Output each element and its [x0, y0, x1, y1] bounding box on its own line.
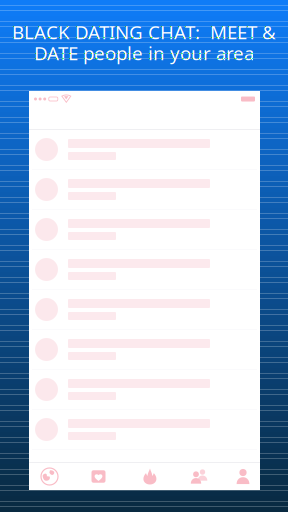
button[interactable]: Profile: [226, 463, 260, 490]
button[interactable]: Chat conversation: [29, 170, 260, 210]
button[interactable]: Likes: [70, 463, 127, 490]
button[interactable]: Discover: [29, 463, 70, 490]
staticText: BLACK DATING CHAT: MEET &: [12, 20, 276, 44]
button[interactable]: Chat conversation: [29, 330, 260, 370]
button[interactable]: Chat conversation: [29, 370, 260, 410]
button[interactable]: Chat conversation: [29, 250, 260, 290]
button[interactable]: Chat conversation: [29, 410, 260, 450]
button[interactable]: Chat conversation: [29, 130, 260, 170]
button[interactable]: Chat conversation: [29, 290, 260, 330]
staticText: DATE people in your area: [34, 41, 254, 65]
button[interactable]: People: [173, 463, 226, 490]
button[interactable]: Hot: [127, 463, 173, 490]
button[interactable]: Chat conversation: [29, 210, 260, 250]
